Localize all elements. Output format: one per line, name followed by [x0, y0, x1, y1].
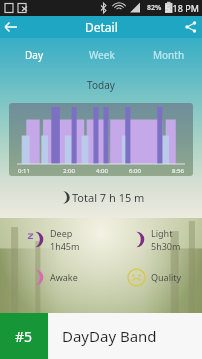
staticText: Total 7 h 15 m: [72, 190, 145, 205]
button[interactable]: Share: [180, 16, 202, 38]
staticText: 1h45m: [50, 240, 80, 252]
staticText: Deep: [50, 227, 73, 239]
staticText: 4:00: [96, 167, 108, 175]
staticText: 2:00: [63, 167, 75, 175]
button[interactable]: Back: [0, 16, 22, 38]
staticText: 8:56: [172, 167, 184, 175]
staticText: 82%: [147, 3, 162, 13]
staticText: Day: [25, 48, 44, 62]
button[interactable]: Deep: [0, 222, 101, 256]
button[interactable]: 0:11: [9, 103, 193, 176]
staticText: 5h30m: [151, 240, 181, 252]
button[interactable]: Light: [101, 222, 202, 256]
staticText: Week: [89, 48, 115, 62]
staticText: Awake: [50, 271, 78, 283]
button[interactable]: Awake: [0, 260, 101, 294]
staticText: 0:11: [18, 167, 30, 175]
staticText: Quality: [151, 271, 182, 283]
staticText: 6:00: [129, 167, 141, 175]
staticText: Light: [151, 227, 173, 239]
staticText: Month: [153, 48, 185, 62]
button[interactable]: #5: [0, 313, 202, 359]
staticText: Today: [0, 78, 202, 92]
staticText: Detail: [85, 19, 118, 35]
staticText: DayDay Band: [62, 326, 157, 346]
staticText: 5:18 PM: [165, 2, 199, 14]
button[interactable]: Month: [135, 46, 202, 64]
button[interactable]: Day: [0, 46, 68, 64]
button[interactable]: Quality: [101, 260, 202, 294]
staticText: #5: [15, 327, 33, 346]
button[interactable]: Week: [68, 46, 135, 64]
